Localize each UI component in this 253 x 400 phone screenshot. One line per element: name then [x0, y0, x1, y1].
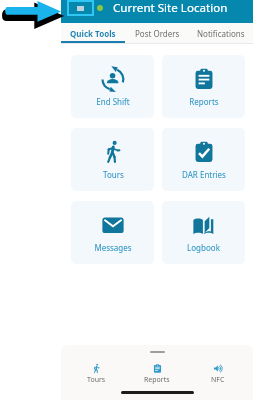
staticText: Current Site Location [113, 0, 228, 16]
button[interactable]: Logbook [162, 201, 245, 264]
staticText: Tours [87, 375, 106, 385]
button[interactable]: Quick Tools [61, 23, 125, 44]
button[interactable]: End Shift [71, 55, 154, 118]
button[interactable]: Open navigation menu [67, 0, 94, 16]
staticText: End Shift [96, 96, 130, 107]
staticText: NFC [211, 375, 225, 385]
button[interactable]: Tours [71, 128, 154, 191]
staticText: Logbook [187, 242, 220, 253]
button[interactable]: Tours [70, 363, 122, 385]
button[interactable]: NFC [192, 363, 244, 385]
staticText: Notifications [197, 28, 245, 39]
button[interactable]: Post Orders [125, 23, 189, 44]
button[interactable]: DAR Entries [162, 128, 245, 191]
staticText: Post Orders [135, 28, 180, 39]
staticText: Messages [94, 242, 132, 253]
button[interactable]: Reports [131, 363, 183, 385]
staticText: Tours [103, 169, 124, 180]
staticText: Reports [144, 375, 170, 385]
button[interactable]: Messages [71, 201, 154, 264]
button[interactable]: Notifications [189, 23, 253, 44]
button[interactable]: Reports [162, 55, 245, 118]
staticText: DAR Entries [182, 169, 226, 180]
staticText: Quick Tools [70, 28, 116, 39]
staticText: Reports [189, 96, 219, 107]
